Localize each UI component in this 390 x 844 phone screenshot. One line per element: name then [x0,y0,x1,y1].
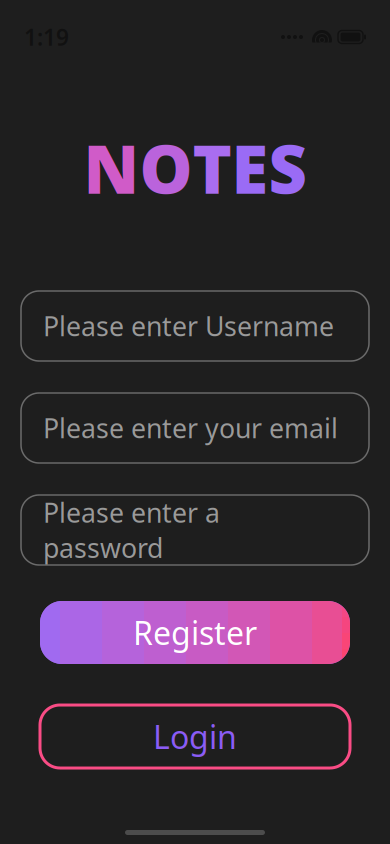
staticText: 1:19 [24,22,69,52]
staticText: E [231,124,268,212]
button[interactable]: Please enter a password [21,495,369,565]
button[interactable]: Please enter Username [21,291,369,361]
staticText: Register [133,611,257,654]
staticText: Please enter your email [43,410,338,446]
staticText: S [268,124,306,212]
button[interactable]: Please enter your email [21,393,369,463]
staticText: Please enter Username [43,308,334,344]
staticText: Login [153,715,237,758]
button[interactable]: Register [40,601,350,664]
staticText: O [139,124,192,212]
staticText: Please enter a password [43,495,220,565]
staticText: T [192,124,231,212]
staticText: N [83,124,139,212]
button[interactable]: Login [40,705,350,768]
